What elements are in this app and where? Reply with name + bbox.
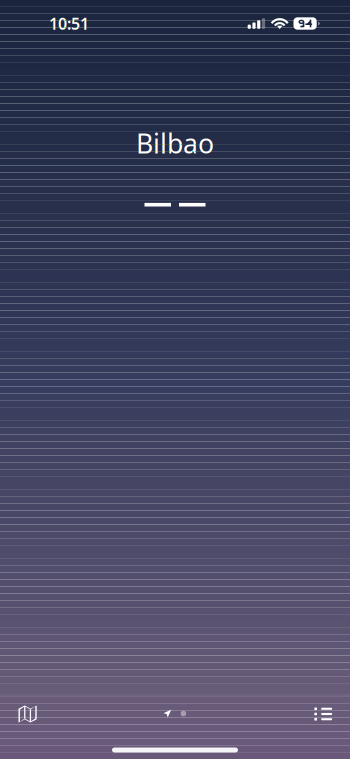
button[interactable]: Weather list: [295, 696, 350, 730]
staticText: Bilbao: [136, 125, 214, 161]
button[interactable]: Current location: [160, 703, 175, 723]
staticText: 10:51: [49, 13, 89, 34]
button[interactable]: Page 2: [176, 703, 191, 723]
button[interactable]: Map: [0, 696, 55, 730]
